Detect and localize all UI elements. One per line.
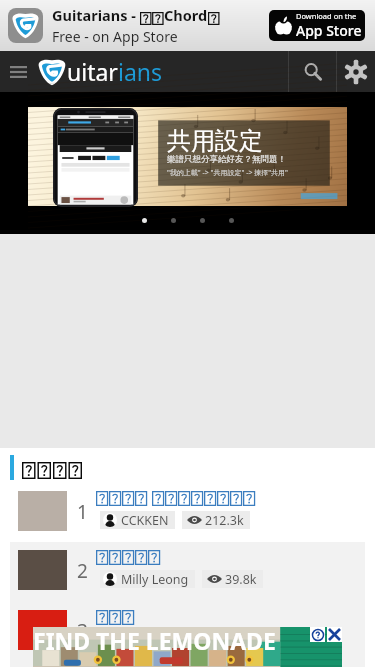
- button[interactable]: Slide 2: [171, 218, 176, 223]
- staticText: Download on the: [296, 11, 357, 21]
- staticText: ians: [118, 56, 163, 87]
- button[interactable]: Slide 1: [142, 218, 147, 223]
- button[interactable]: Guitarians app icon: [8, 8, 43, 43]
- staticText: Guitarians -: [52, 5, 140, 25]
- staticText: "我的上載" -> "共用設定" -> 揀擇"共用": [167, 168, 288, 178]
- button[interactable]: Menu: [0, 51, 37, 92]
- staticText: Milly Leong: [121, 571, 189, 588]
- staticText: 3: [77, 618, 88, 644]
- staticText: 共用設定: [167, 126, 263, 156]
- button[interactable]: Settings: [337, 51, 375, 92]
- staticText: 2: [77, 558, 88, 584]
- button[interactable]: Slide 3: [200, 218, 205, 223]
- button[interactable]: Download on the App Store: [269, 10, 365, 41]
- staticText: App Store: [296, 21, 362, 40]
- button[interactable]: Search: [289, 51, 336, 92]
- button[interactable]: Guitarians home: [37, 51, 163, 92]
- button[interactable]: Promotion banner: [28, 107, 347, 206]
- staticText: 212.3k: [205, 512, 244, 529]
- button[interactable]: 1: [0, 491, 375, 546]
- staticText: 39.8k: [225, 571, 257, 588]
- staticText: 樂譜只想分享給好友？無問題！: [167, 154, 286, 165]
- staticText: 1: [77, 499, 88, 525]
- button[interactable]: Slide 4: [229, 218, 234, 223]
- staticText: uitar: [67, 56, 118, 87]
- staticText: FIND THE LEMONADE: [33, 625, 276, 656]
- button[interactable]: 2: [0, 550, 375, 605]
- staticText: Chord: [164, 5, 208, 25]
- button[interactable]: Close ad: [327, 627, 342, 642]
- staticText: Free - on App Store: [52, 27, 178, 46]
- button[interactable]: Advertisement: Find the Lemonade: [33, 627, 342, 667]
- button[interactable]: 3: [0, 610, 375, 665]
- staticText: CCKKEN: [121, 512, 169, 529]
- button[interactable]: Ad info: [310, 627, 325, 642]
